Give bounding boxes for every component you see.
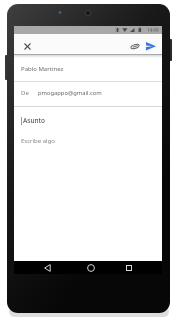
button[interactable]: De: [14, 82, 162, 107]
button[interactable]: Asunto: [14, 107, 162, 133]
button[interactable]: [128, 40, 141, 53]
staticText: De: [21, 89, 29, 97]
staticText: 14:49: [147, 27, 159, 33]
staticText: Escribe algo: [21, 137, 55, 145]
staticText: pmogappo@gmail.com: [38, 89, 102, 97]
staticText: Pablo Martínez: [21, 65, 64, 73]
button[interactable]: [144, 40, 157, 52]
staticText: Asunto: [23, 116, 46, 125]
button[interactable]: [121, 261, 136, 274]
button[interactable]: [40, 261, 55, 274]
button[interactable]: Escribe algo: [14, 133, 162, 149]
button[interactable]: [83, 261, 98, 274]
button[interactable]: Pablo Martínez: [14, 55, 162, 82]
button[interactable]: [21, 39, 34, 53]
